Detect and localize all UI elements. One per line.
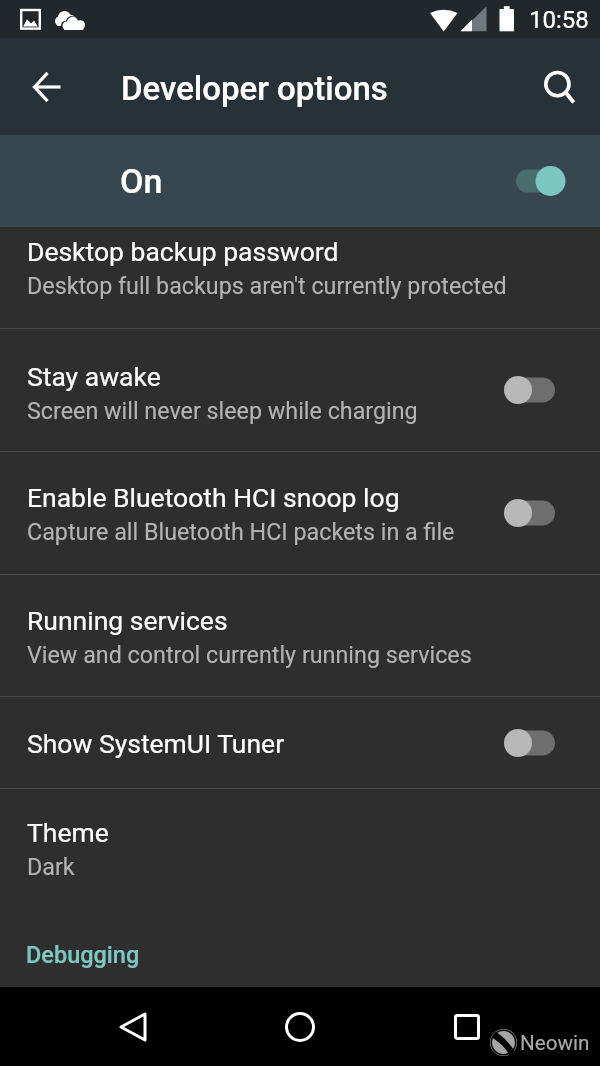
button[interactable]: Stay awake [0,329,600,451]
staticText: Capture all Bluetooth HCI packets in a f… [27,518,455,545]
button[interactable]: Recent apps [441,1001,493,1053]
button[interactable]: Show SystemUI Tuner [504,713,600,773]
staticText: 10:58 [529,6,589,34]
button[interactable]: Home [274,1001,326,1053]
staticText: On [120,161,163,201]
staticText: Show SystemUI Tuner [27,728,285,759]
staticText: Running services [27,605,228,636]
staticText: Screen will never sleep while charging [27,397,418,424]
staticText: View and control currently running servi… [27,641,472,668]
staticText: Developer options [121,69,388,108]
button[interactable]: Enable Bluetooth HCI snoop log [0,452,600,574]
button[interactable]: Desktop backup password [0,227,600,328]
button[interactable]: Running services [0,575,600,696]
button[interactable]: Stay awake [504,360,600,420]
staticText: Debugging [26,941,140,969]
button[interactable]: Search [531,59,587,115]
staticText: Enable Bluetooth HCI snoop log [27,482,400,513]
button[interactable]: Navigate up [19,59,75,115]
button[interactable]: On [0,135,600,227]
staticText: Stay awake [27,361,161,392]
button[interactable]: Theme [0,789,600,901]
staticText: Desktop backup password [27,236,339,267]
staticText: Neowin [520,1031,590,1055]
staticText: Theme [27,817,109,848]
other: Neowin [490,1029,517,1056]
staticText: Desktop full backups aren't currently pr… [27,272,507,299]
button[interactable]: Back [108,1001,160,1053]
button[interactable]: Enable Bluetooth HCI snoop log [504,483,600,543]
button[interactable]: Show SystemUI Tuner [0,697,600,788]
staticText: Dark [27,853,75,880]
